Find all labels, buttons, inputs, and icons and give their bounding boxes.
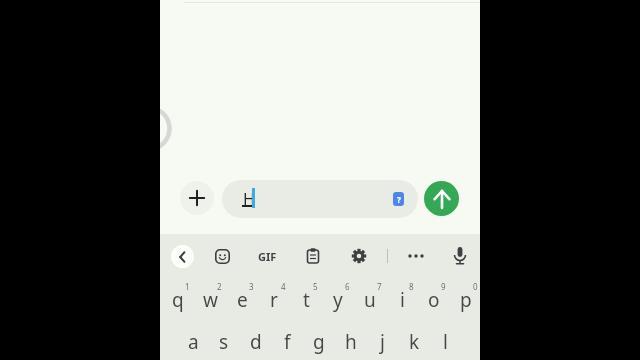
staticText: k <box>409 329 420 355</box>
staticText: 9 <box>441 281 446 292</box>
button[interactable]: a <box>177 321 209 360</box>
button[interactable]: GIF <box>253 242 282 270</box>
staticText: l <box>443 329 448 355</box>
staticText: 6 <box>345 281 350 292</box>
staticText: w <box>203 287 218 313</box>
staticText: 1 <box>185 281 190 292</box>
button[interactable]: d <box>240 321 272 360</box>
button[interactable] <box>208 242 237 270</box>
button[interactable]: j <box>366 321 398 360</box>
button[interactable]: t <box>290 279 322 321</box>
button[interactable]: f <box>271 321 303 360</box>
staticText: 2 <box>217 281 222 292</box>
button[interactable]: p <box>450 279 480 321</box>
staticText: GIF <box>258 249 277 264</box>
staticText: d <box>250 329 262 355</box>
button[interactable]: r <box>258 279 290 321</box>
staticText: s <box>219 329 229 355</box>
button[interactable] <box>171 245 194 268</box>
staticText: i <box>400 287 405 313</box>
staticText: 8 <box>409 281 414 292</box>
staticText: e <box>237 287 248 313</box>
staticText: h <box>345 329 357 355</box>
button[interactable] <box>446 242 474 270</box>
staticText: 0 <box>473 281 478 292</box>
staticText: 7 <box>377 281 382 292</box>
staticText: t <box>303 287 310 313</box>
button[interactable]: o <box>418 279 450 321</box>
staticText: a <box>188 329 199 355</box>
staticText: r <box>270 287 278 313</box>
button[interactable] <box>402 242 430 270</box>
staticText: y <box>333 287 343 313</box>
button[interactable]: H <box>222 180 418 218</box>
button[interactable]: y <box>322 279 354 321</box>
staticText: p <box>460 287 472 313</box>
button[interactable] <box>298 242 327 270</box>
button[interactable] <box>344 242 374 270</box>
button[interactable]: l <box>429 321 461 360</box>
button[interactable] <box>424 181 459 216</box>
staticText: 4 <box>281 281 286 292</box>
button[interactable]: i <box>386 279 418 321</box>
button[interactable] <box>180 181 214 215</box>
button[interactable]: e <box>226 279 258 321</box>
staticText: f <box>284 329 291 355</box>
staticText: g <box>313 329 325 355</box>
button[interactable]: s <box>208 321 240 360</box>
button[interactable]: q <box>162 279 194 321</box>
button[interactable]: k <box>398 321 430 360</box>
staticText: j <box>380 329 385 355</box>
staticText: q <box>172 287 184 313</box>
staticText: 5 <box>313 281 318 292</box>
staticText: u <box>364 287 376 313</box>
staticText: 3 <box>249 281 254 292</box>
button[interactable]: w <box>194 279 226 321</box>
button[interactable]: h <box>335 321 367 360</box>
staticText: o <box>428 287 440 313</box>
button[interactable]: u <box>354 279 386 321</box>
staticText: H <box>243 188 255 210</box>
staticText: ? <box>397 194 401 205</box>
button[interactable]: g <box>303 321 335 360</box>
